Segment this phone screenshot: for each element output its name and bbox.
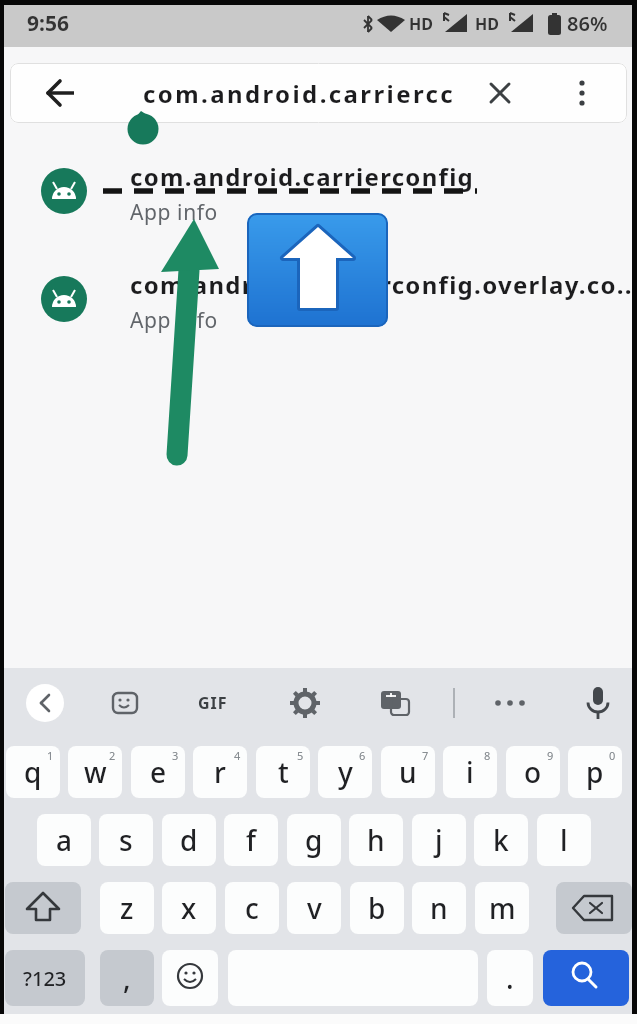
staticText: 0 [609, 748, 616, 763]
button[interactable]: d [162, 814, 216, 866]
button[interactable] [162, 950, 218, 1006]
staticText: 1 [47, 748, 54, 763]
staticText: i [466, 753, 474, 791]
button[interactable] [558, 69, 606, 117]
staticText: u [399, 753, 417, 791]
button[interactable] [5, 882, 81, 934]
staticText: g [305, 821, 323, 859]
button[interactable]: t [256, 746, 310, 798]
button[interactable] [373, 681, 417, 725]
staticText: n [430, 889, 448, 927]
button[interactable]: , [100, 950, 154, 1006]
button[interactable]: v [287, 882, 341, 934]
staticText: HD [409, 13, 433, 35]
staticText: y [338, 753, 353, 791]
staticText: c [245, 889, 259, 927]
staticText: s [119, 821, 133, 859]
staticText: m [489, 889, 516, 927]
button[interactable]: x [162, 882, 216, 934]
button[interactable]: q [6, 746, 60, 798]
button[interactable]: . [487, 950, 533, 1006]
button[interactable]: ?123 [5, 950, 85, 1006]
button[interactable]: i [443, 746, 497, 798]
staticText: GIF [198, 692, 228, 714]
button[interactable]: k [474, 814, 528, 866]
staticText: l [560, 821, 568, 859]
staticText: f [246, 821, 256, 859]
button[interactable] [40, 69, 88, 117]
button[interactable]: u [381, 746, 435, 798]
staticText: t [278, 753, 289, 791]
button[interactable]: GIF [190, 681, 236, 725]
button[interactable]: h [349, 814, 403, 866]
staticText: q [24, 753, 42, 791]
staticText: o [524, 753, 542, 791]
staticText: h [367, 821, 385, 859]
button[interactable] [556, 882, 632, 934]
staticText: 8 [484, 748, 491, 763]
staticText: a [56, 821, 73, 859]
button[interactable]: o [506, 746, 560, 798]
staticText: b [368, 889, 386, 927]
staticText: e [150, 753, 167, 791]
staticText: 4 [234, 748, 241, 763]
staticText: 5 [297, 748, 304, 763]
button[interactable] [23, 681, 67, 725]
button[interactable]: f [224, 814, 278, 866]
staticText: r [214, 753, 226, 791]
staticText: , [123, 959, 131, 997]
staticText: com.android.carriercc [143, 77, 456, 110]
staticText: 2 [109, 748, 116, 763]
button[interactable]: p [568, 746, 622, 798]
staticText: 7 [422, 748, 429, 763]
button[interactable]: j [412, 814, 466, 866]
button[interactable] [488, 681, 532, 725]
button[interactable] [576, 681, 620, 725]
button[interactable]: r [193, 746, 247, 798]
button[interactable]: a [37, 814, 91, 866]
button[interactable]: s [99, 814, 153, 866]
staticText: z [120, 889, 134, 927]
staticText: com.android.carrierconfig.overlay.co.. [130, 268, 633, 301]
button[interactable]: n [412, 882, 466, 934]
staticText: App info [130, 306, 218, 335]
button[interactable]: m [475, 882, 529, 934]
staticText: 9:56 [27, 9, 69, 38]
staticText: k [493, 821, 509, 859]
staticText: HD [475, 13, 499, 35]
button[interactable]: l [537, 814, 591, 866]
button[interactable] [543, 950, 629, 1006]
button[interactable]: w [68, 746, 122, 798]
button[interactable]: y [318, 746, 372, 798]
staticText: 9 [547, 748, 554, 763]
staticText: 3 [172, 748, 179, 763]
staticText: App info [130, 198, 218, 227]
staticText: 86% [567, 10, 608, 37]
button[interactable] [283, 681, 327, 725]
staticText: x [181, 889, 197, 927]
button[interactable]: com.android.carrierconfig [20, 158, 620, 230]
button[interactable]: e [131, 746, 185, 798]
button[interactable]: z [100, 882, 154, 934]
button[interactable]: g [287, 814, 341, 866]
staticText: j [435, 821, 443, 859]
button[interactable]: c [225, 882, 279, 934]
staticText: com.android.carrierconfig [130, 160, 475, 193]
button[interactable]: com.android.carrierconfig.overlay.co.. [20, 266, 620, 338]
button[interactable]: b [350, 882, 404, 934]
staticText: p [586, 753, 604, 791]
staticText: . [506, 959, 514, 997]
staticText: v [307, 889, 322, 927]
staticText: ?123 [23, 965, 67, 992]
button[interactable] [476, 69, 524, 117]
staticText: 6 [359, 748, 366, 763]
button[interactable] [103, 681, 147, 725]
staticText: w [84, 753, 107, 791]
staticText: d [180, 821, 198, 859]
